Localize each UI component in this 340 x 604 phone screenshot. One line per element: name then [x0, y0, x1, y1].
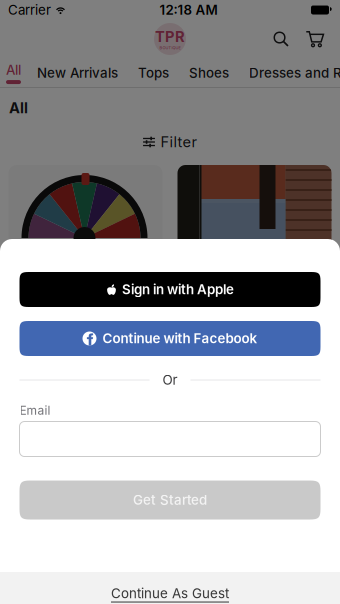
button[interactable]: New Arrivals — [27, 58, 128, 88]
button[interactable]: Shoes — [179, 58, 239, 88]
button[interactable]: Search — [268, 26, 294, 52]
staticText: BOUTIQUE — [159, 45, 180, 50]
button[interactable]: Spin the wheel — [8, 165, 162, 365]
staticText: All — [6, 62, 21, 78]
staticText: 12:18 AM — [159, 2, 217, 18]
button[interactable]: Filter — [142, 130, 197, 154]
staticText: Sign in with Apple — [122, 281, 234, 297]
staticText: Or — [162, 372, 177, 388]
button[interactable]: Continue with Facebook — [19, 321, 320, 356]
button[interactable]: Cart — [302, 26, 328, 52]
button[interactable]: Product — [177, 165, 331, 365]
button[interactable]: Sign in with Apple — [19, 272, 320, 307]
staticText: New Arrivals — [37, 65, 118, 81]
button[interactable]: Tops — [128, 58, 179, 88]
button[interactable]: Get Started — [19, 480, 320, 519]
staticText: Get Started — [133, 492, 207, 508]
staticText: Shoes — [189, 65, 229, 81]
button[interactable]: All — [0, 58, 27, 88]
staticText: Email — [19, 403, 50, 417]
staticText: Tops — [138, 65, 169, 81]
button[interactable]: Dresses and Rompers — [239, 58, 340, 88]
staticText: Continue As Guest — [111, 585, 229, 601]
staticText: Filter — [160, 133, 197, 151]
staticText: Carrier — [8, 2, 51, 18]
staticText: Continue with Facebook — [102, 330, 257, 346]
staticText: All — [9, 99, 28, 117]
staticText: Dresses and Rompers — [249, 65, 340, 81]
button[interactable]: Continue As Guest — [0, 572, 340, 604]
staticText: TPR — [155, 28, 185, 45]
